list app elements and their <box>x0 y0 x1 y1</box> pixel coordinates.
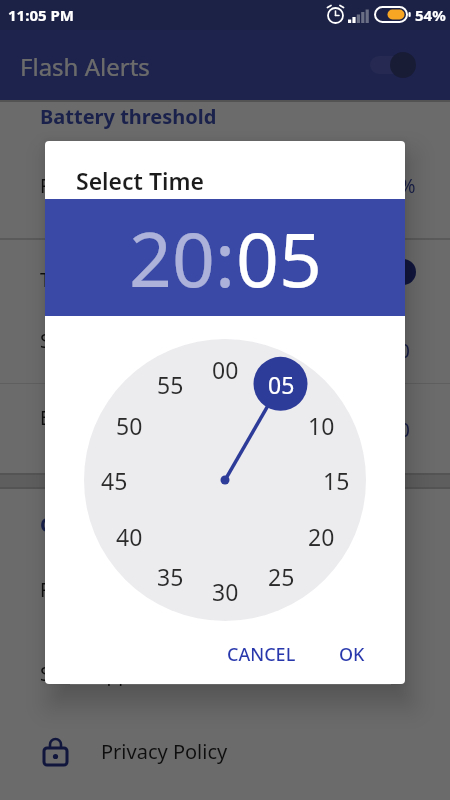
staticText: : <box>215 207 236 309</box>
staticText: 25 <box>268 561 295 592</box>
staticText: OK <box>339 642 365 667</box>
staticText: Flash when battery is below <box>40 173 287 199</box>
button[interactable]: 25 <box>256 560 306 592</box>
staticText: End time <box>40 405 120 431</box>
staticText: 45 <box>101 465 128 496</box>
staticText: 50 <box>116 410 143 441</box>
staticText: 05 <box>236 207 322 309</box>
staticText: Time range <box>40 267 142 293</box>
button[interactable]: 10 <box>296 409 346 441</box>
staticText: 35 <box>157 561 184 592</box>
staticText: 00 <box>212 354 239 385</box>
button[interactable]: Privacy Policy <box>0 720 450 782</box>
button[interactable]: CANCEL <box>216 628 306 680</box>
staticText: 0 <box>399 417 410 443</box>
button[interactable]: 35 <box>145 560 195 592</box>
staticText: 20 <box>308 521 335 552</box>
staticText: 15 <box>323 465 350 496</box>
staticText: Privacy Policy <box>101 738 228 765</box>
button[interactable]: 30 <box>200 575 250 607</box>
staticText: Share app <box>40 661 130 687</box>
staticText: 54% <box>415 5 446 25</box>
button[interactable]: 45 <box>89 464 139 496</box>
staticText: 30 <box>212 576 239 607</box>
button[interactable]: 05 <box>256 368 306 400</box>
staticText: Other <box>40 511 99 538</box>
staticText: 40 <box>116 521 143 552</box>
staticText: 15 % <box>373 173 416 199</box>
staticText: 20 <box>129 207 215 309</box>
button[interactable]: 20 <box>296 520 346 552</box>
staticText: Start time <box>40 328 128 354</box>
button[interactable]: 15 <box>311 464 361 496</box>
staticText: 55 <box>157 369 184 400</box>
staticText: 05 <box>268 369 295 400</box>
button[interactable]: 00 <box>200 353 250 385</box>
staticText: 0 <box>399 338 410 364</box>
staticText: 11:05 PM <box>8 5 74 25</box>
button[interactable]: 50 <box>104 409 154 441</box>
staticText: Flash Alerts <box>20 50 150 83</box>
button[interactable] <box>370 56 416 74</box>
staticText: Battery threshold <box>40 103 217 130</box>
staticText: 10 <box>308 410 335 441</box>
staticText: Select Time <box>76 165 205 196</box>
staticText: Rate this app <box>40 577 157 603</box>
staticText: CANCEL <box>227 642 296 667</box>
button[interactable]: 55 <box>145 368 195 400</box>
button[interactable]: OK <box>321 628 383 680</box>
button[interactable]: 40 <box>104 520 154 552</box>
